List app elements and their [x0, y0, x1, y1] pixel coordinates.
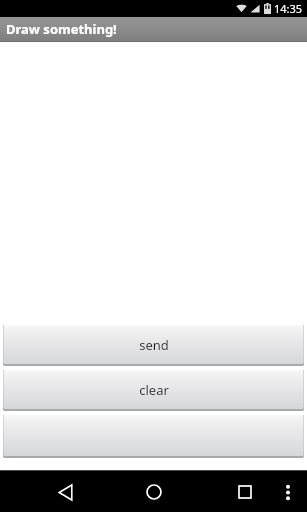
button[interactable]: send	[3, 325, 304, 366]
button[interactable]: clear	[3, 370, 304, 411]
button[interactable]: Home	[137, 475, 171, 509]
button[interactable]: Draw action	[3, 415, 304, 458]
staticText: send	[139, 336, 169, 354]
staticText: clear	[139, 381, 169, 399]
staticText: 14:35	[274, 1, 303, 16]
staticText: Draw something!	[6, 20, 117, 38]
button[interactable]: More options	[275, 479, 301, 505]
button[interactable]: Back	[48, 475, 82, 509]
button[interactable]: Recent apps	[228, 475, 262, 509]
